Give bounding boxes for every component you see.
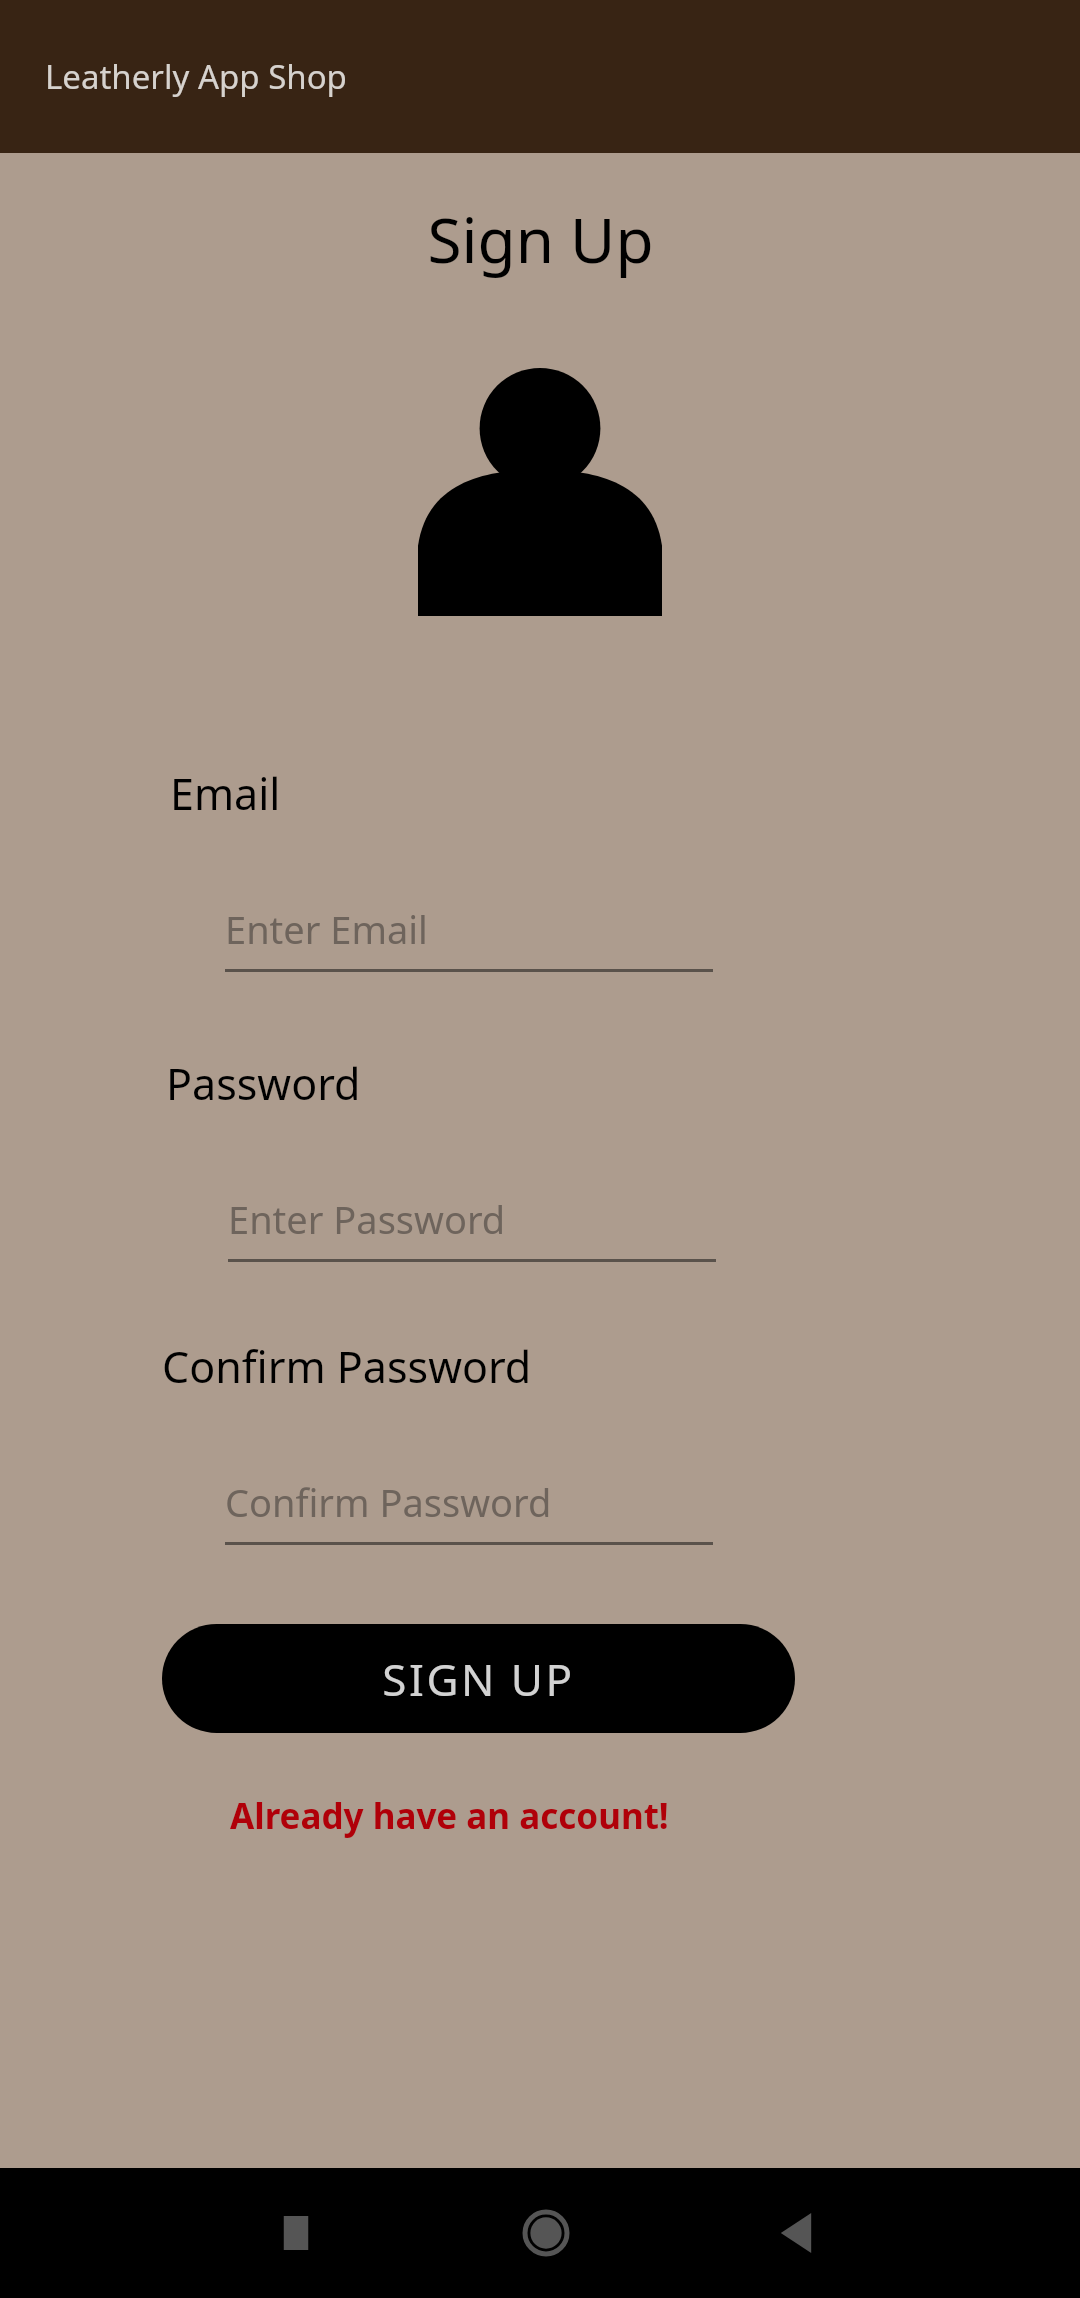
button[interactable]: Recent apps bbox=[248, 2185, 344, 2281]
staticText: Enter Password bbox=[228, 1193, 506, 1245]
staticText: Enter Email bbox=[225, 903, 428, 955]
button[interactable]: Enter Email bbox=[225, 903, 713, 972]
staticText: Confirm Password bbox=[225, 1476, 552, 1528]
staticText: Email bbox=[170, 764, 281, 823]
other: Profile avatar bbox=[418, 366, 662, 616]
staticText: Leatherly App Shop bbox=[45, 54, 347, 99]
staticText: Confirm Password bbox=[162, 1337, 532, 1396]
button[interactable]: Home bbox=[498, 2185, 594, 2281]
staticText: Sign Up bbox=[427, 197, 654, 281]
staticText: Already have an account! bbox=[230, 1792, 669, 1840]
button[interactable]: Already have an account! bbox=[228, 1790, 671, 1842]
button[interactable]: SIGN UP bbox=[162, 1624, 795, 1733]
staticText: SIGN UP bbox=[382, 1649, 575, 1709]
staticText: Password bbox=[166, 1054, 361, 1113]
button[interactable]: Enter Password bbox=[228, 1193, 716, 1262]
button[interactable]: Back bbox=[748, 2185, 844, 2281]
button[interactable]: Confirm Password bbox=[225, 1476, 713, 1545]
